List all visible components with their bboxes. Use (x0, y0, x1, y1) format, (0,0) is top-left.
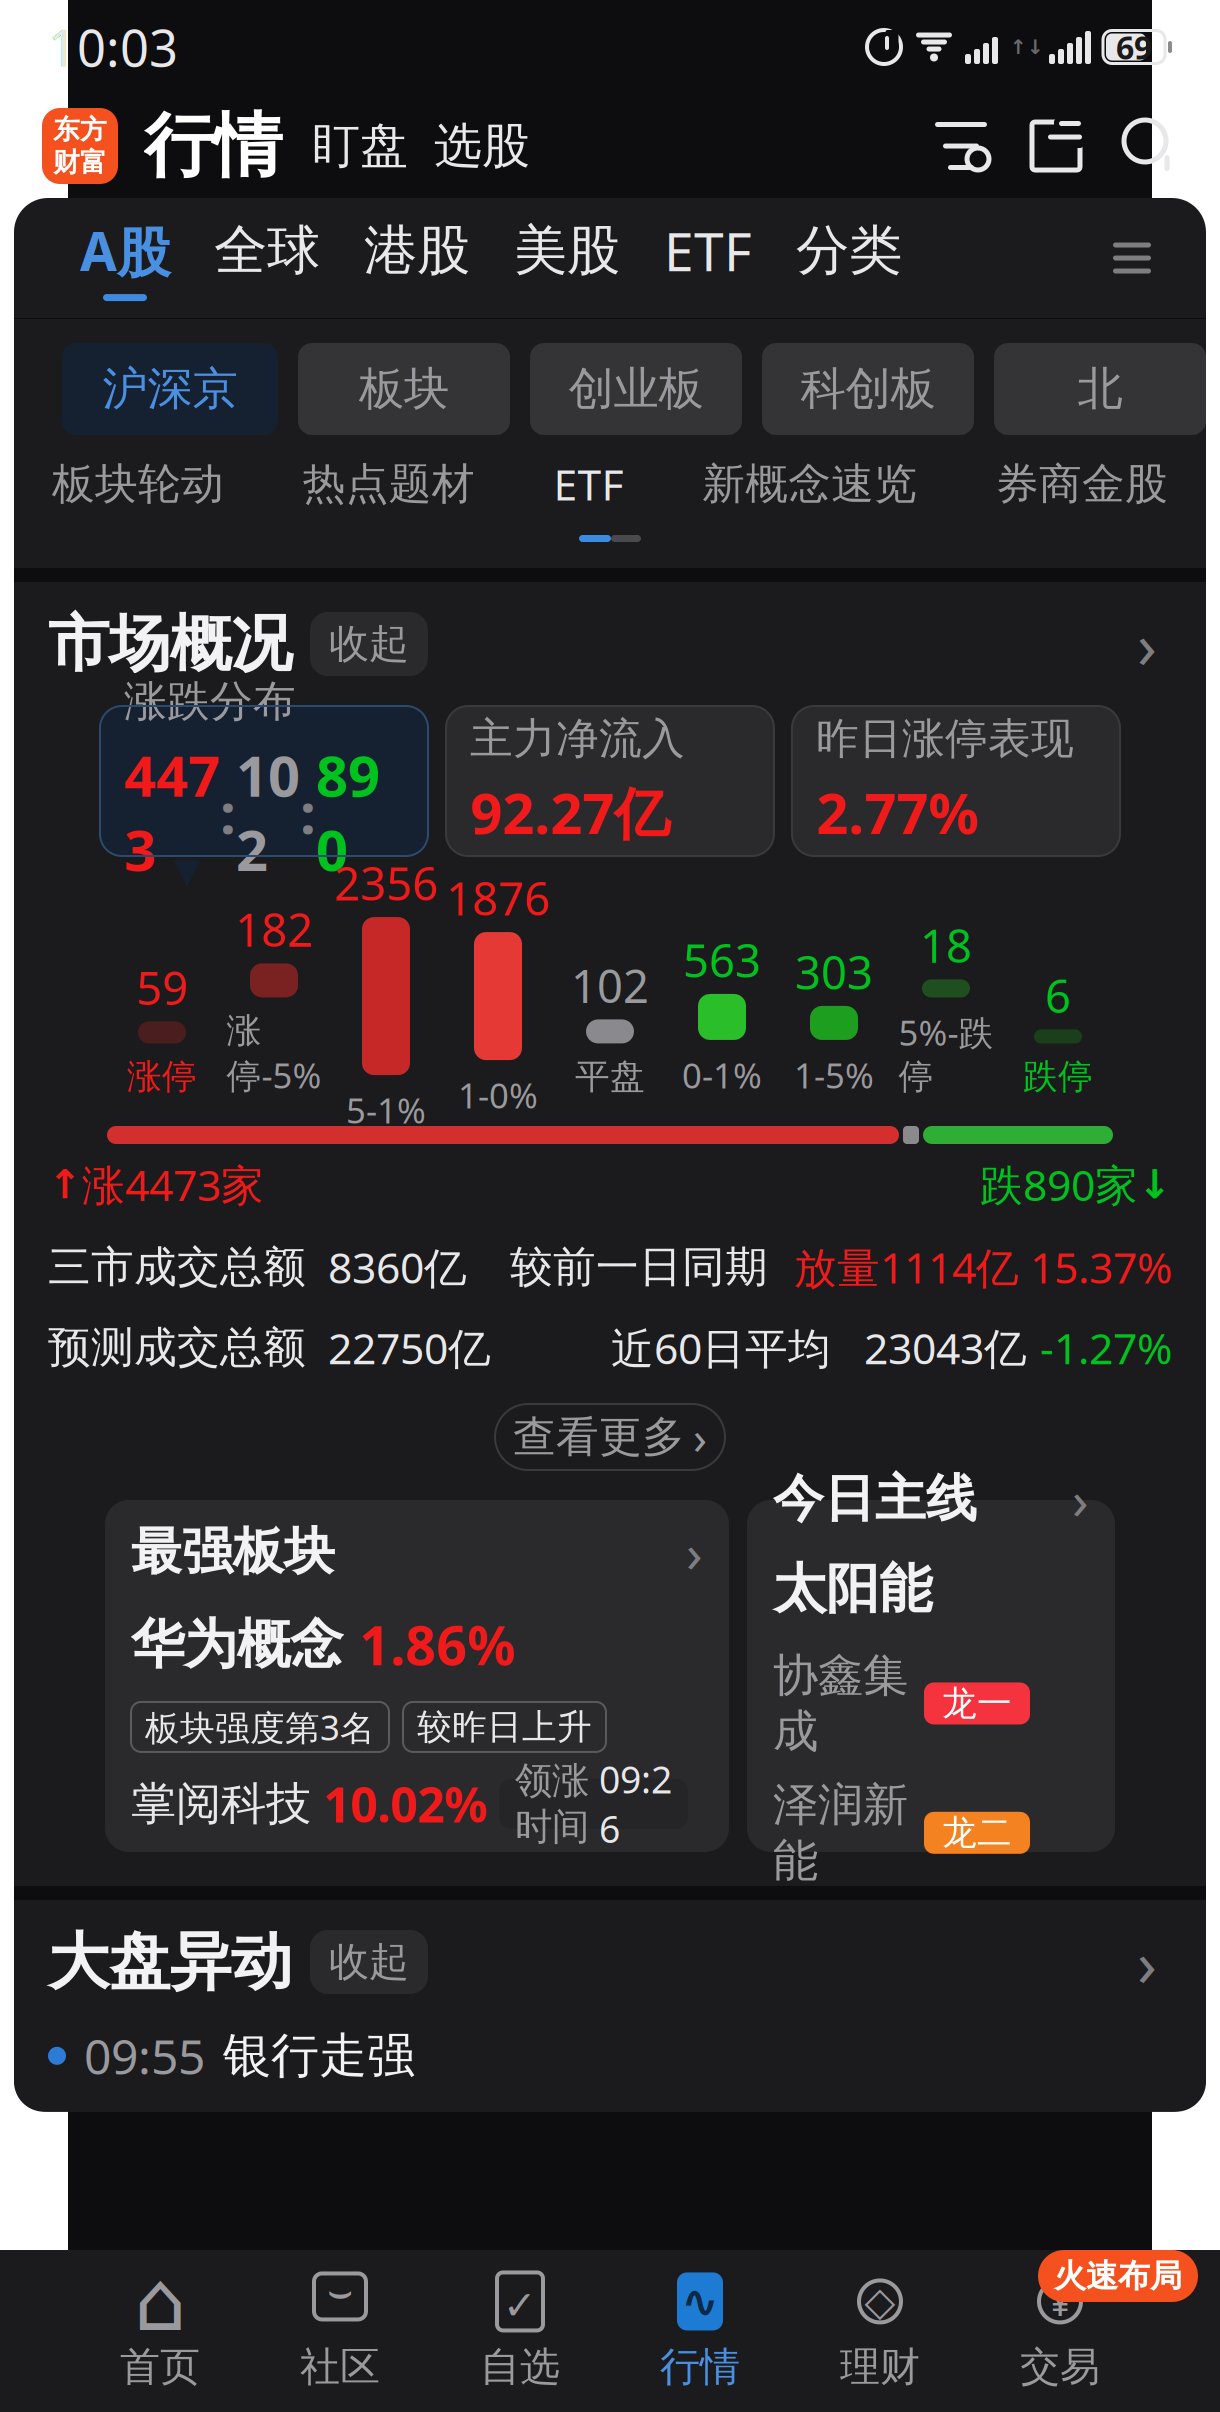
staticText: 收起 (329, 619, 409, 668)
staticText: 分类 (796, 218, 902, 283)
staticText: › (1137, 1919, 1157, 2004)
staticText: 较昨日上升 (417, 1706, 592, 1748)
staticText: 22750亿 (306, 1319, 491, 1376)
staticText: 掌阅科技 (131, 1776, 311, 1832)
button[interactable]: 查看更多 (495, 1404, 725, 1470)
button[interactable]: 涨跌分布 (100, 706, 428, 856)
button[interactable]: 港股 (342, 199, 492, 317)
button[interactable]: 主力净流入 (446, 706, 774, 856)
button[interactable]: A股 (58, 199, 192, 317)
button[interactable]: 热点题材 (293, 457, 485, 511)
button[interactable]: 行情 (118, 103, 282, 189)
staticText: 182 (235, 899, 313, 959)
button[interactable]: 科创板 (762, 343, 974, 435)
button[interactable]: ETF (642, 199, 774, 317)
staticText: 昨日涨停表现 (816, 713, 1074, 765)
button[interactable]: 全球 (192, 199, 342, 317)
button[interactable]: ∿ (610, 2256, 790, 2406)
staticText: 理财 (840, 2342, 920, 2391)
staticText: : (300, 775, 316, 849)
button[interactable]: 板块轮动 (42, 457, 234, 511)
button[interactable]: 板块 (298, 343, 510, 435)
button[interactable]: ¥ (970, 2256, 1150, 2406)
button[interactable]: 分享 (990, 118, 1084, 174)
button[interactable]: 创业板 (530, 343, 742, 435)
staticText: ⌂ (134, 2254, 186, 2348)
staticText: ✓ (503, 2283, 537, 2328)
button[interactable]: 最强板块 (105, 1500, 729, 1852)
staticText: 1.86% (359, 1609, 515, 1680)
staticText: 890 (316, 738, 380, 886)
staticText: 华为概念 (131, 1612, 343, 1677)
button[interactable]: 更多 (1122, 1930, 1172, 1994)
staticText: 北 (1077, 361, 1122, 417)
button[interactable]: 搜索 (1084, 118, 1178, 174)
staticText: 热点题材 (303, 458, 475, 510)
staticText: 泽润新能 (773, 1777, 908, 1888)
button[interactable]: 美股 (492, 199, 642, 317)
button[interactable]: 更多分类 (1102, 218, 1162, 298)
staticText: 0-1% (682, 1052, 762, 1098)
button[interactable]: ✓ (430, 2256, 610, 2406)
staticText: ↑ (48, 1162, 82, 1207)
button[interactable]: ◇ (790, 2256, 970, 2406)
staticText: ∿ (681, 2276, 719, 2327)
button[interactable]: 昨日涨停表现 (792, 706, 1120, 856)
button[interactable]: ⌣ (250, 2256, 430, 2406)
staticText: 跌890家 (980, 1156, 1138, 1213)
staticText: › (1137, 601, 1157, 686)
staticText: 新概念速览 (702, 458, 917, 510)
staticText: 盯盘 (312, 116, 408, 175)
staticText: 板块轮动 (52, 458, 224, 510)
button[interactable]: 收起 (310, 612, 428, 676)
staticText: › (693, 1407, 707, 1467)
staticText: 交易 (1020, 2342, 1100, 2391)
staticText: 5%-跌停 (898, 1009, 993, 1098)
staticText: 券商金股 (996, 458, 1168, 510)
staticText: ¥ (1049, 2277, 1070, 2326)
staticText: 社区 (300, 2342, 380, 2391)
button[interactable]: 分类 (774, 199, 924, 317)
staticText: ↓ (1138, 1162, 1172, 1207)
staticText: 跌停 (1023, 1055, 1093, 1098)
staticText: 全球 (214, 218, 320, 283)
button[interactable]: 东方财富 (42, 108, 118, 184)
staticText: 行情 (660, 2342, 740, 2391)
staticText: ◇ (864, 2279, 895, 2324)
staticText: 较前一日同期 (510, 1241, 768, 1293)
staticText: 5-1% (346, 1087, 426, 1133)
staticText: › (1072, 1463, 1089, 1534)
button[interactable]: 选股 (408, 116, 530, 175)
staticText: 龙二 (942, 1811, 1012, 1854)
staticText: 102 (571, 955, 649, 1015)
staticText: ↑↓ (1010, 36, 1044, 58)
staticText: 科创板 (800, 361, 935, 417)
staticText: 2.77% (816, 775, 979, 849)
staticText: 查看更多 (513, 1411, 685, 1463)
staticText: ⌣ (327, 2273, 353, 2312)
staticText: 东方 (53, 113, 107, 146)
staticText: 23043亿 (831, 1319, 1040, 1376)
staticText: ▾ (174, 839, 201, 899)
staticText: 2356 (334, 853, 438, 913)
staticText: 选股 (434, 116, 530, 175)
button[interactable]: 券商金股 (986, 457, 1178, 511)
button[interactable]: 列表设置 (932, 119, 990, 173)
staticText: 主力净流入 (470, 713, 685, 765)
staticText: 6 (1045, 965, 1071, 1025)
staticText: 大盘异动 (48, 1924, 292, 2000)
button[interactable]: 盯盘 (282, 116, 408, 175)
staticText: 财富 (53, 146, 107, 179)
button[interactable]: 今日主线 (747, 1500, 1115, 1852)
button[interactable]: 北 (994, 343, 1206, 435)
button[interactable]: ETF (543, 457, 633, 511)
button[interactable]: 收起 (310, 1930, 428, 1994)
button[interactable]: 更多 (1122, 612, 1172, 676)
staticText: 银行走强 (223, 2026, 415, 2085)
staticText: 领涨时间 (515, 1758, 589, 1850)
staticText: 行情 (144, 103, 282, 189)
button[interactable]: 沪深京 (62, 343, 278, 435)
staticText: 涨4473家 (82, 1156, 264, 1213)
button[interactable]: 新概念速览 (692, 457, 927, 511)
button[interactable]: ⌂ (70, 2256, 250, 2406)
